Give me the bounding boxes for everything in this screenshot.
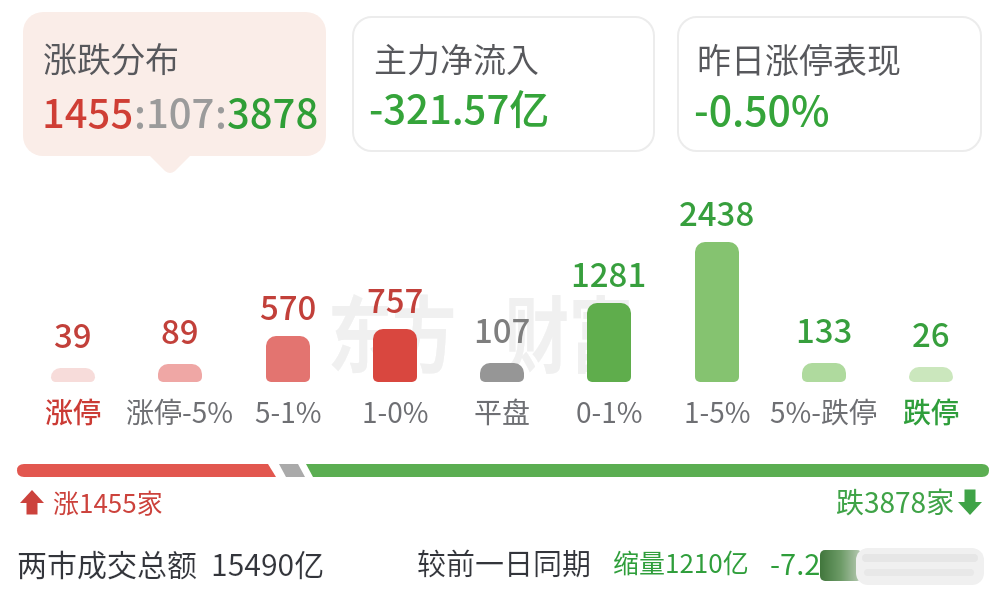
button[interactable]: [352, 16, 655, 152]
staticText: 东方: [328, 269, 456, 386]
staticText: 两市成交总额: [17, 541, 197, 584]
staticText: 2438: [679, 188, 755, 236]
staticText: 107: [146, 82, 215, 140]
staticText: 缩量1210亿: [613, 543, 749, 581]
button[interactable]: [677, 16, 982, 152]
staticText: -0.50%: [694, 78, 830, 137]
staticText: -321.57亿: [369, 78, 550, 136]
staticText: 涨跌分布: [43, 33, 179, 82]
staticText: 5-1%: [255, 391, 322, 432]
staticText: 107: [474, 305, 531, 353]
staticText: 平盘: [474, 391, 531, 432]
staticText: 1-0%: [362, 391, 429, 432]
staticText: 1281: [571, 249, 647, 297]
staticText: 跌3878家: [836, 481, 955, 522]
staticText: 26: [912, 309, 950, 357]
staticText: :: [215, 82, 227, 140]
staticText: 0-1%: [576, 391, 643, 432]
staticText: 1455: [42, 82, 134, 140]
staticText: 39: [54, 310, 92, 358]
staticText: -7.2: [770, 541, 821, 583]
staticText: 1-5%: [684, 391, 751, 432]
button[interactable]: [23, 12, 326, 156]
staticText: 涨停-5%: [126, 391, 234, 432]
staticText: 89: [161, 306, 199, 354]
staticText: 涨1455家: [53, 483, 163, 521]
staticText: 757: [367, 275, 424, 323]
staticText: 主力净流入: [374, 34, 539, 82]
staticText: 3878: [227, 82, 319, 140]
staticText: 涨停: [45, 391, 102, 432]
staticText: 跌停: [903, 391, 960, 432]
staticText: 财富: [505, 269, 633, 386]
staticText: 较前一日同期: [417, 541, 592, 583]
staticText: 15490亿: [211, 541, 325, 584]
staticText: 昨日涨停表现: [697, 34, 901, 83]
staticText: 570: [260, 282, 317, 330]
staticText: 133: [796, 305, 853, 353]
staticText: 5%-跌停: [770, 391, 878, 432]
staticText: :: [134, 82, 146, 140]
